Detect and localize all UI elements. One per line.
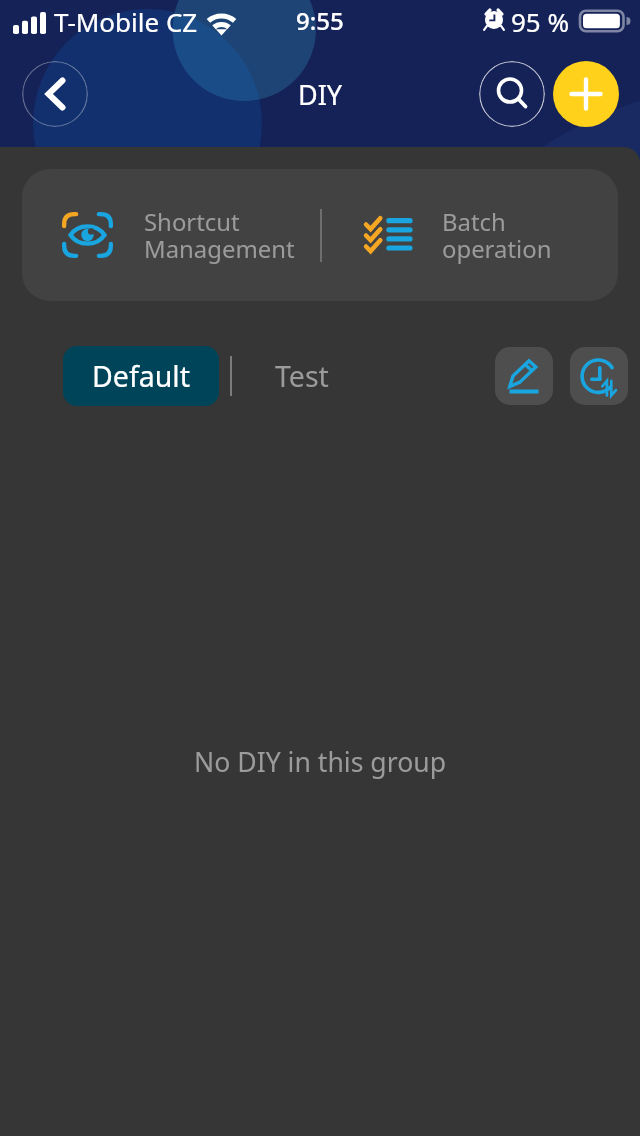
staticText: Batch operation [442,205,552,265]
staticText: DIY [298,76,343,113]
staticText: 9:55 [296,4,344,37]
button[interactable]: Back [22,61,88,127]
staticText: No DIY in this group [194,744,447,780]
staticText: 95 % [511,4,570,39]
button[interactable]: Search [479,61,545,127]
staticText: Default [92,357,190,396]
button[interactable]: Default [63,346,219,406]
staticText: T-Mobile CZ [54,4,198,39]
button[interactable]: Shortcut Management [22,169,320,301]
button[interactable]: Test [232,346,372,406]
staticText: Test [275,357,329,396]
staticText: Shortcut Management [144,205,295,265]
button[interactable]: Edit [495,347,553,405]
button[interactable]: Batch operation [322,169,552,301]
button[interactable]: History [570,347,628,405]
button[interactable]: Add [553,61,619,127]
